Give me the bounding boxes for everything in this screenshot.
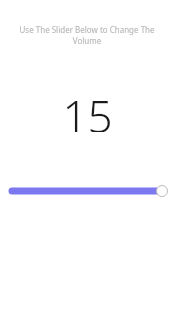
button[interactable]: Volume slider [0,178,174,204]
staticText: 15 [62,86,113,132]
staticText: Use The Slider Below to Change The Volum… [5,24,169,46]
